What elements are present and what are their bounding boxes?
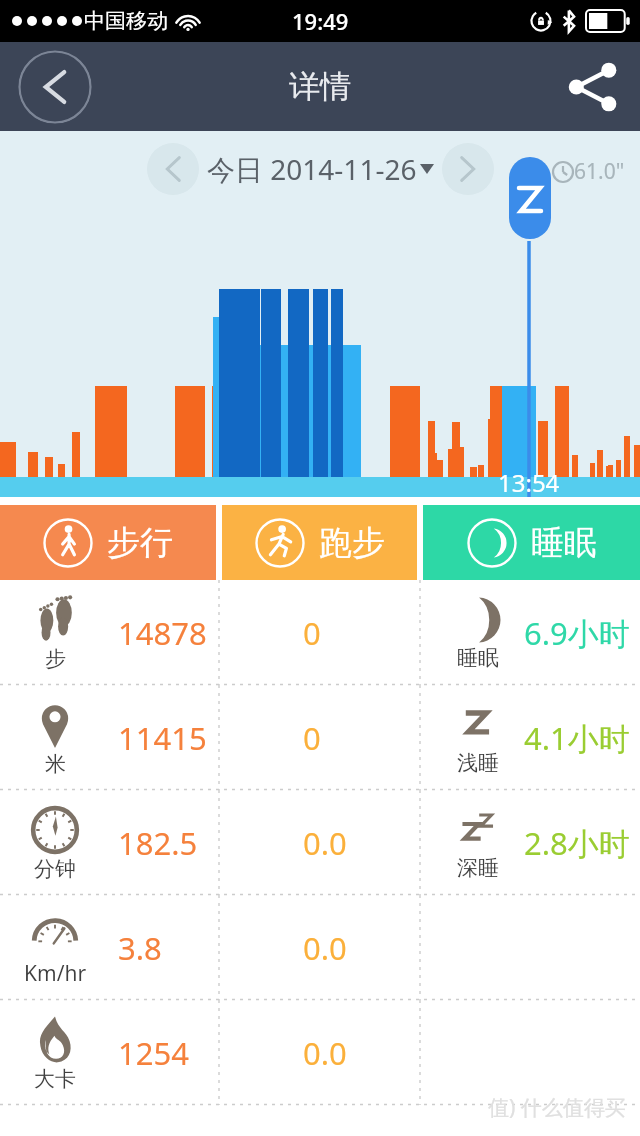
staticText: 米 xyxy=(45,751,66,777)
staticText: 大卡 xyxy=(34,1066,76,1092)
staticText: 0.0 xyxy=(303,1032,347,1074)
button[interactable]: Back xyxy=(18,50,92,124)
button[interactable]: Share xyxy=(564,59,620,115)
staticText: 今日 2014-11-26 xyxy=(207,150,417,188)
staticText: 0.0 xyxy=(303,822,347,864)
staticText: 4.1小时 xyxy=(524,717,630,759)
button[interactable]: 跑步 xyxy=(222,505,417,580)
staticText: 3.8 xyxy=(118,927,162,969)
staticText: 0.0 xyxy=(303,927,347,969)
staticText: 中国移动 xyxy=(84,8,168,34)
staticText: 14878 xyxy=(118,612,207,654)
button[interactable]: 睡眠 xyxy=(423,505,640,580)
staticText: 详情 xyxy=(289,67,351,106)
staticText: 6.9小时 xyxy=(524,612,630,654)
staticText: 61.0" xyxy=(574,157,625,186)
button[interactable]: 步行 xyxy=(0,505,216,580)
staticText: 值) 什么值得买 xyxy=(488,1093,626,1122)
staticText: 0 xyxy=(303,612,321,654)
staticText: 182.5 xyxy=(118,822,198,864)
staticText: 步行 xyxy=(107,522,173,564)
staticText: 浅睡 xyxy=(457,750,499,776)
staticText: 0 xyxy=(303,717,321,759)
staticText: 深睡 xyxy=(457,855,499,881)
staticText: 步 xyxy=(45,646,66,672)
staticText: 19:49 xyxy=(292,6,349,36)
staticText: 11415 xyxy=(118,717,207,759)
staticText: 分钟 xyxy=(34,856,76,882)
staticText: 2.8小时 xyxy=(524,822,630,864)
staticText: Km/hr xyxy=(24,959,87,988)
staticText: 1254 xyxy=(118,1032,189,1074)
staticText: 睡眠 xyxy=(531,522,597,564)
staticText: 13:54 xyxy=(498,466,560,497)
staticText: 睡眠 xyxy=(457,645,499,671)
staticText: 跑步 xyxy=(319,522,385,564)
button[interactable]: Previous day xyxy=(147,143,199,195)
button[interactable]: Next day xyxy=(442,143,494,195)
